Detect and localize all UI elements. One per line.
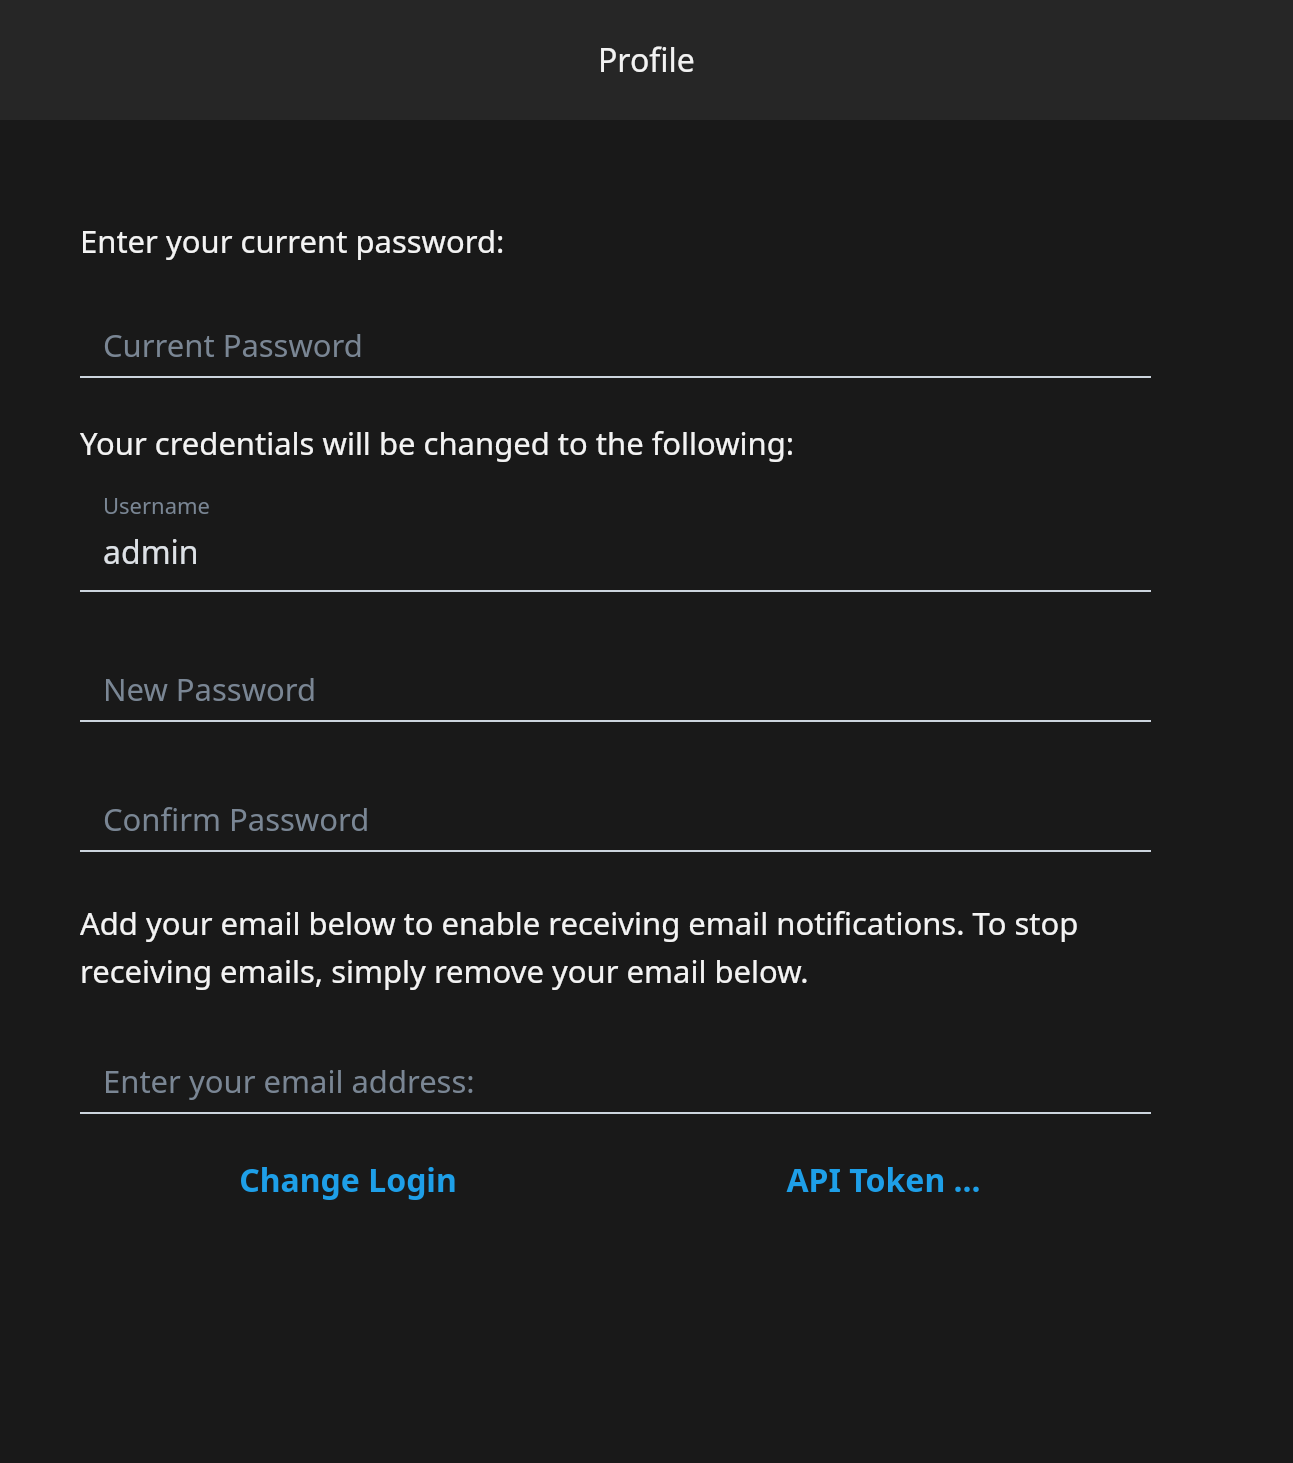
staticText: Your credentials will be changed to the … (80, 422, 795, 464)
staticText: Username (103, 490, 211, 520)
staticText: Add your email below to enable receiving… (80, 902, 1151, 992)
staticText: New Password (103, 668, 317, 710)
button[interactable]: Username (80, 478, 1151, 592)
staticText: API Token ... (786, 1158, 981, 1202)
staticText: Profile (598, 38, 695, 82)
staticText: Change Login (239, 1158, 457, 1202)
staticText: admin (103, 530, 199, 574)
button[interactable]: Change Login (80, 1138, 615, 1222)
staticText: Current Password (103, 324, 363, 366)
button[interactable]: Confirm Password (80, 782, 1151, 852)
staticText: Confirm Password (103, 798, 370, 840)
button[interactable]: New Password (80, 652, 1151, 722)
staticText: Enter your email address: (103, 1060, 475, 1102)
staticText: Enter your current password: (80, 220, 505, 262)
button[interactable]: API Token ... (615, 1138, 1151, 1222)
button[interactable]: Current Password (80, 308, 1151, 378)
button[interactable]: Enter your email address: (80, 1044, 1151, 1114)
